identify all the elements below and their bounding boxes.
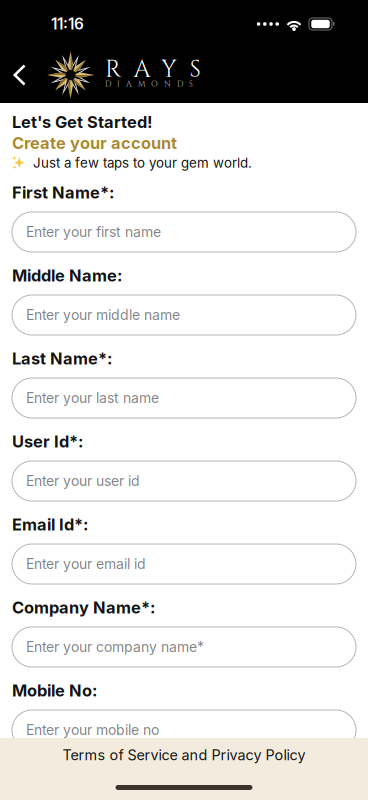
button[interactable]: Enter your user id xyxy=(12,461,356,501)
staticText: Enter your user id xyxy=(26,472,140,489)
staticText: RAYS xyxy=(105,53,200,86)
button[interactable]: Enter your middle name xyxy=(12,295,356,335)
staticText: Enter your last name xyxy=(26,389,159,406)
staticText: Enter your company name* xyxy=(26,638,204,655)
staticText: Enter your mobile no xyxy=(26,721,159,738)
button[interactable]: Enter your email id xyxy=(12,544,356,584)
staticText: Last Name*: xyxy=(12,349,112,368)
staticText: Terms of Service and Privacy Policy xyxy=(62,746,305,764)
staticText: Company Name*: xyxy=(12,598,155,617)
staticText: User Id*: xyxy=(12,432,83,451)
button[interactable]: Enter your first name xyxy=(12,212,356,252)
button[interactable]: Enter your mobile no xyxy=(12,710,356,750)
staticText: Mobile No: xyxy=(12,681,97,700)
staticText: 11:16 xyxy=(51,15,84,33)
staticText: Middle Name: xyxy=(12,266,122,285)
staticText: Enter your first name xyxy=(26,223,161,240)
button[interactable]: Enter your last name xyxy=(12,378,356,418)
staticText: DIAMONDS xyxy=(105,79,193,89)
button[interactable]: Terms of Service and Privacy Policy xyxy=(0,738,368,772)
button[interactable]: Back xyxy=(0,49,47,101)
staticText: Enter your middle name xyxy=(26,306,180,323)
staticText: Just a few taps to your gem world. xyxy=(33,155,252,171)
staticText: Let's Get Started! xyxy=(12,112,153,132)
staticText: First Name*: xyxy=(12,183,114,202)
button[interactable]: Enter your company name* xyxy=(12,627,356,667)
staticText: Create your account xyxy=(12,133,177,153)
staticText: Enter your email id xyxy=(26,555,146,572)
staticText: Email Id*: xyxy=(12,515,88,534)
